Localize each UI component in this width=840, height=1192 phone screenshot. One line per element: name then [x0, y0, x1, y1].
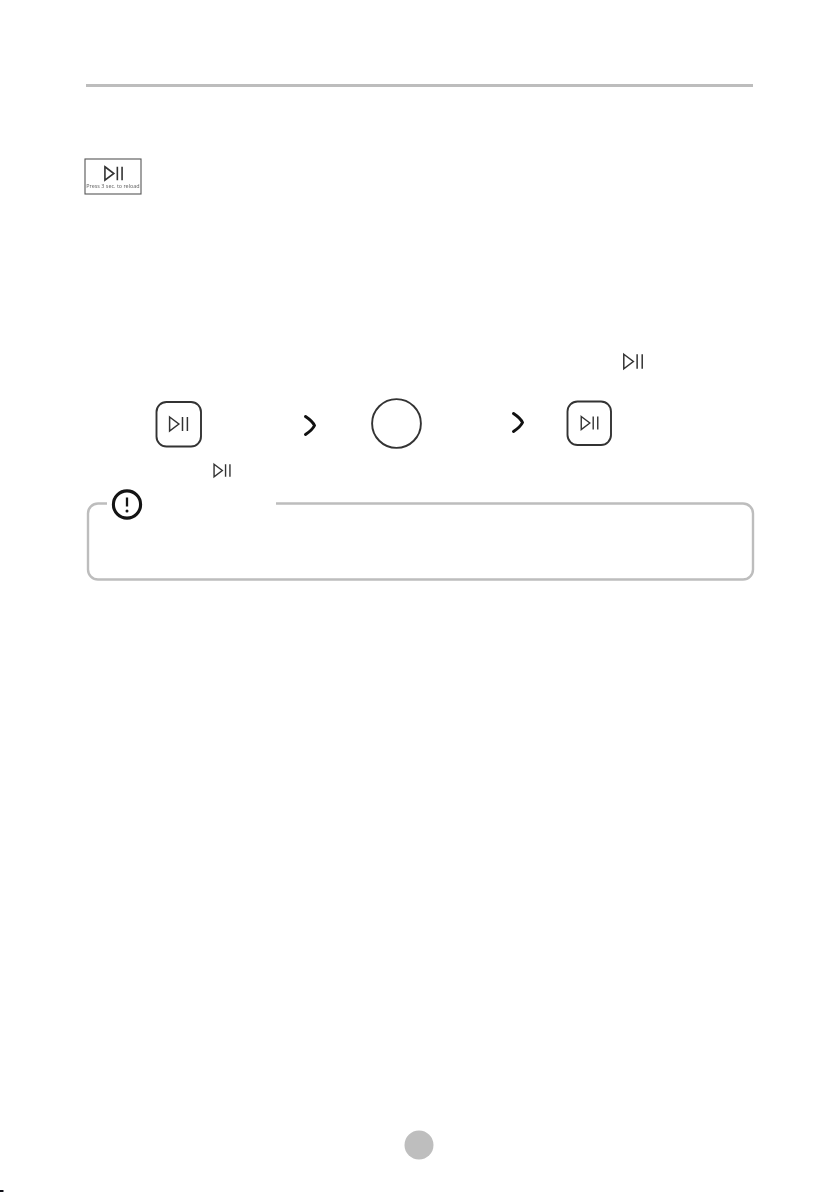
button[interactable]: Step 3: press play / pause again	[567, 401, 612, 446]
staticText: Press 3 sec. to reload	[86, 182, 140, 194]
button[interactable]: Important note	[88, 503, 753, 580]
button[interactable]: Play / pause key, press 3 sec. to reload	[85, 159, 141, 194]
button[interactable]: Page scrubber	[404, 1130, 434, 1160]
button[interactable]: Step 1: press play / pause	[156, 402, 202, 448]
button[interactable]: Step 2: status indicator	[372, 399, 421, 448]
